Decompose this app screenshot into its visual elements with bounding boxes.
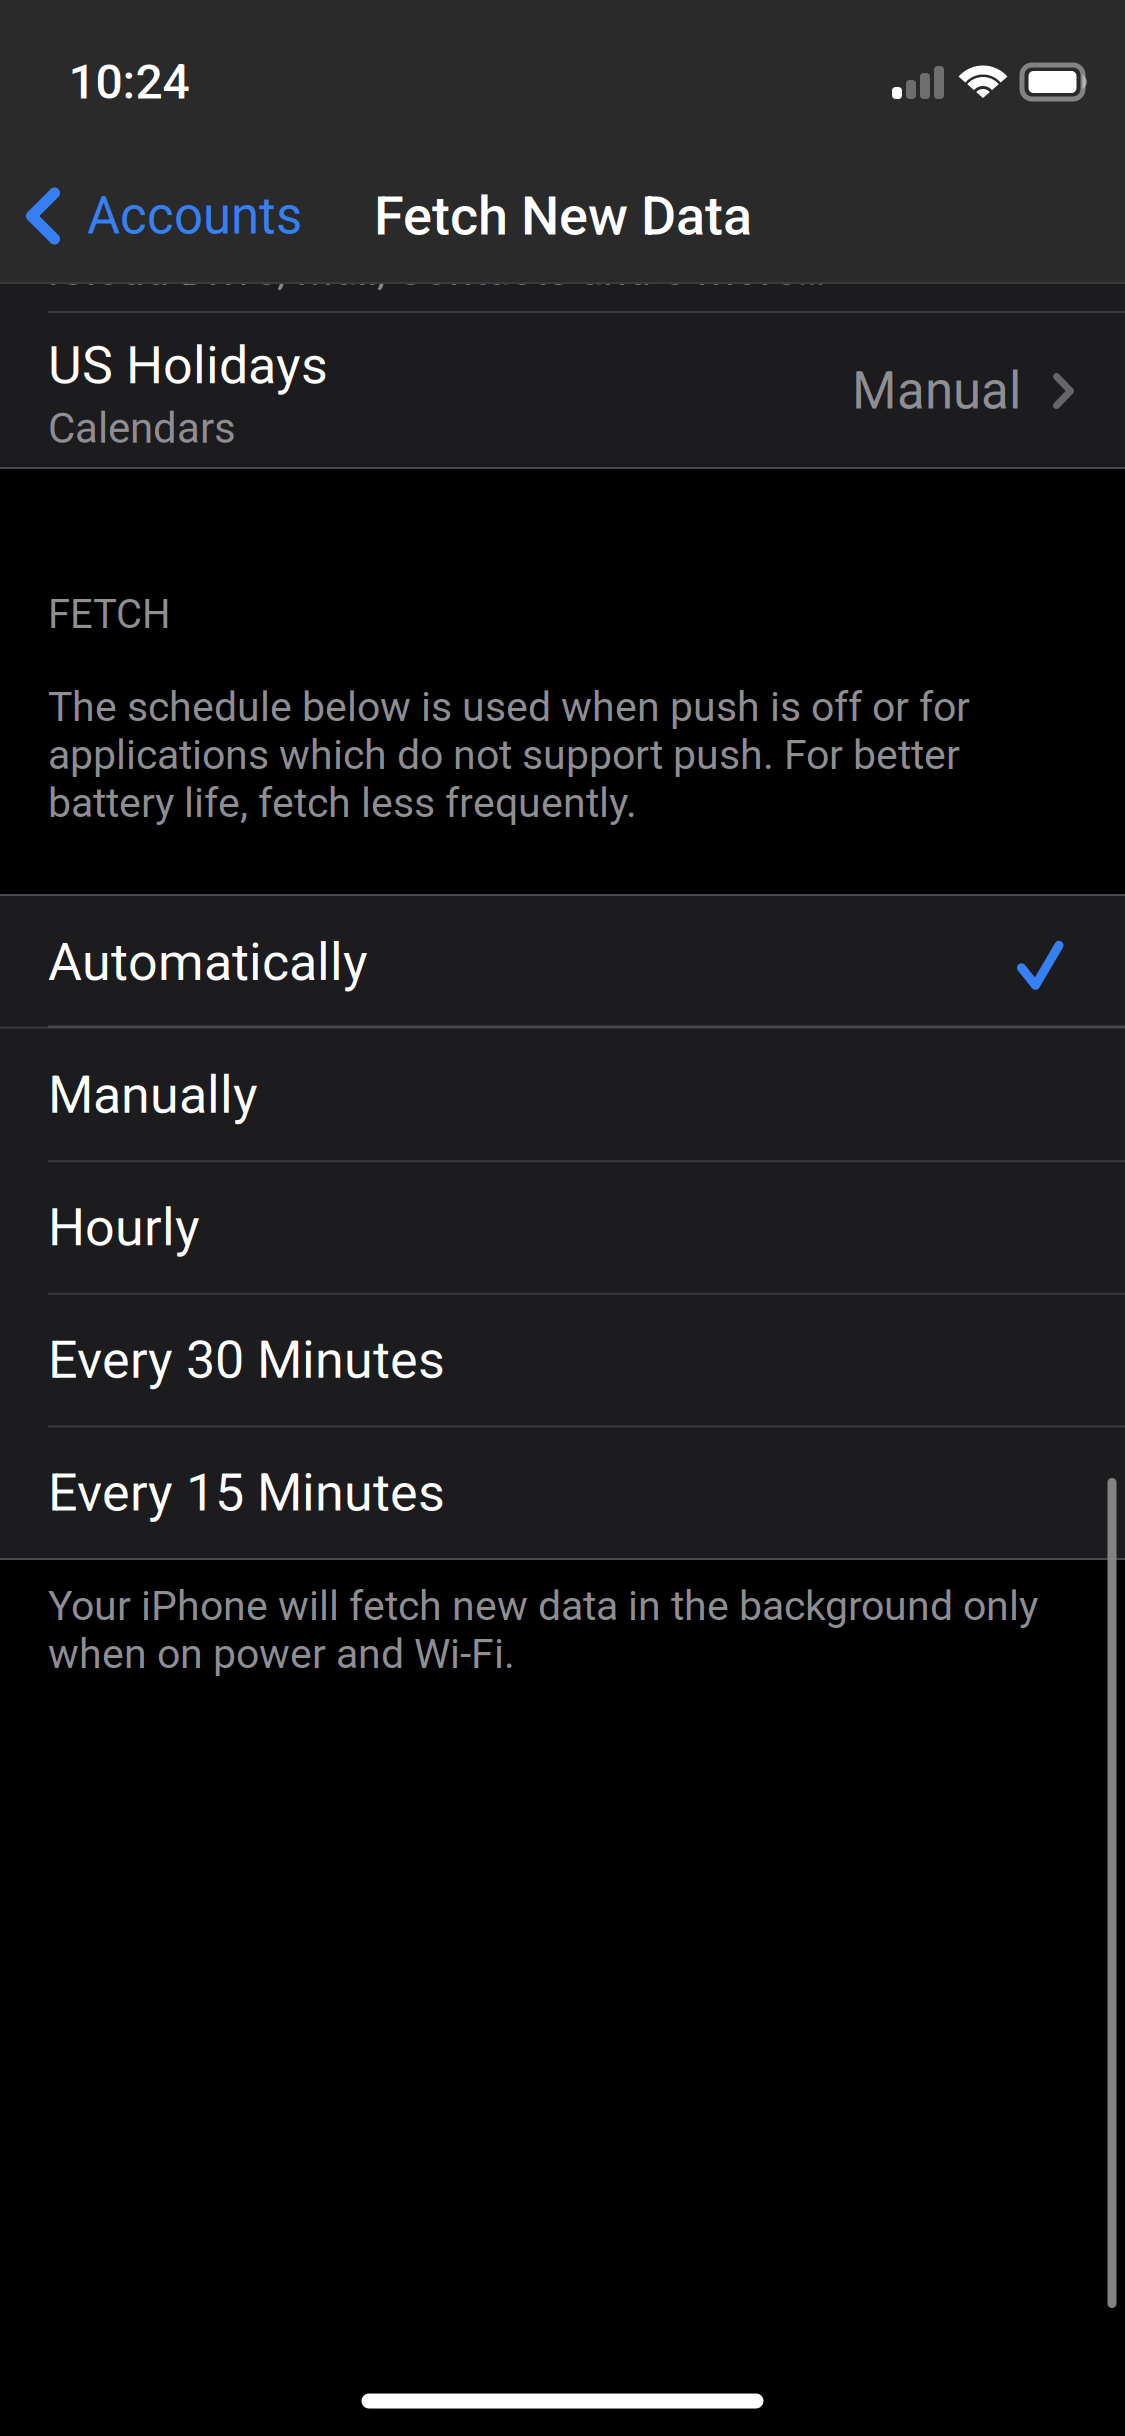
button[interactable]: Hourly: [0, 1161, 1125, 1294]
staticText: Your iPhone will fetch new data in the b…: [48, 1582, 1038, 1678]
button[interactable]: Manually: [0, 1029, 1125, 1161]
button[interactable]: Accounts: [0, 146, 326, 286]
staticText: Manual: [852, 361, 1021, 421]
staticText: Hourly: [48, 1197, 200, 1258]
staticText: Every 15 Minutes: [48, 1462, 445, 1523]
staticText: FETCH: [48, 591, 171, 638]
staticText: Automatically: [48, 932, 368, 993]
button[interactable]: Automatically: [0, 896, 1125, 1029]
staticText: 10:24: [68, 54, 189, 110]
staticText: The schedule below is used when push is …: [48, 683, 970, 827]
staticText: Every 30 Minutes: [48, 1330, 445, 1390]
staticText: Calendars: [48, 404, 236, 453]
staticText: Accounts: [87, 186, 302, 246]
button[interactable]: Every 30 Minutes: [0, 1294, 1125, 1426]
button[interactable]: US Holidays: [0, 313, 1125, 469]
staticText: Manually: [48, 1064, 258, 1125]
staticText: US Holidays: [48, 335, 328, 396]
button[interactable]: Every 15 Minutes: [0, 1426, 1125, 1559]
staticText: Fetch New Data: [374, 184, 752, 248]
staticText: iCloud Drive, Mail, Contacts and 5 more…: [48, 245, 826, 295]
